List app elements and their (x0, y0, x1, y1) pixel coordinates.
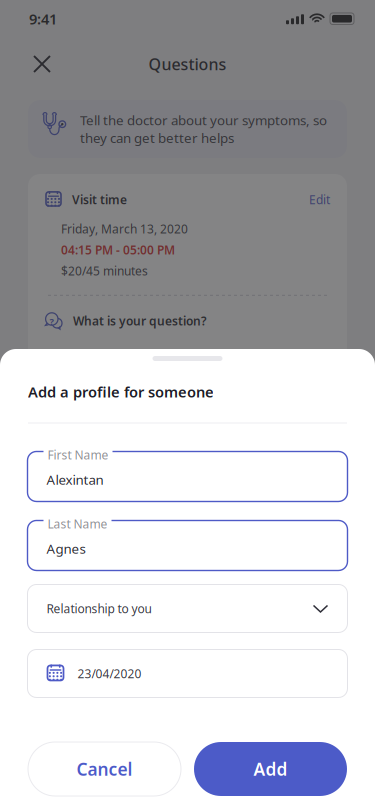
staticText: 04:15 PM - 05:00 PM (61, 242, 175, 258)
staticText: Questions (148, 53, 226, 75)
staticText: Agnes (46, 540, 85, 557)
staticText: What is your question? (73, 313, 207, 329)
staticText: Edit (309, 191, 330, 207)
staticText: First Name (47, 447, 108, 463)
staticText: Cancel (76, 757, 132, 780)
staticText: 23/04/2020 (77, 665, 141, 681)
staticText: Tell the doctor about your symptoms, so … (80, 111, 327, 147)
staticText: Add (253, 757, 287, 780)
button[interactable]: Edit (309, 191, 330, 207)
button[interactable]: Cancel (28, 742, 181, 796)
staticText: Friday, March 13, 2020 (61, 221, 188, 237)
button[interactable]: Close (24, 46, 60, 82)
staticText: Relationship to you (46, 600, 151, 616)
staticText: Add a profile for someone (28, 382, 214, 401)
staticText: Last Name (47, 516, 107, 532)
button[interactable]: Relationship to you (27, 584, 347, 632)
staticText: ? (50, 315, 54, 327)
staticText: Alexintan (46, 471, 103, 488)
button[interactable]: Add (194, 742, 347, 796)
staticText: 9:41 (29, 9, 57, 28)
staticText: Visit time (72, 191, 127, 207)
staticText: $20/45 minutes (61, 263, 148, 279)
button[interactable]: 23/04/2020 (27, 649, 347, 697)
